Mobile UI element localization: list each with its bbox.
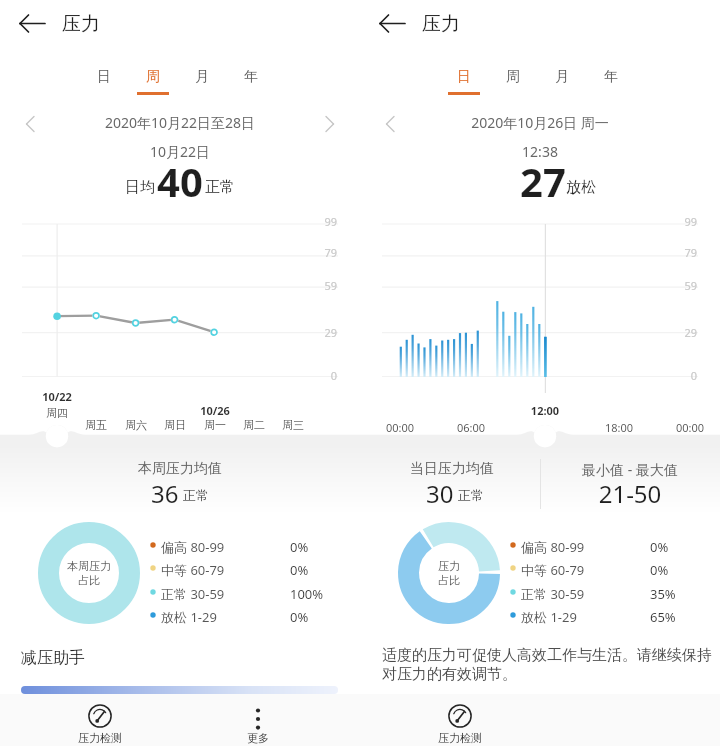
button[interactable]: Back <box>368 6 412 50</box>
staticText: 当日压力均值 <box>368 460 536 478</box>
staticText: 06:00 <box>449 420 493 435</box>
staticText: 本周压力均值 <box>0 460 360 478</box>
staticText: 00:00 <box>378 420 422 435</box>
staticText: 59 <box>660 278 697 293</box>
staticText: 29 <box>300 325 337 340</box>
button[interactable]: 年 <box>590 61 632 97</box>
staticText: 减压助手 <box>21 648 85 668</box>
button[interactable]: Previous period <box>12 108 44 140</box>
staticText: 周四 <box>39 406 75 420</box>
staticText: 最小值 - 最大值 <box>550 460 710 479</box>
staticText: 2020年10月26日 周一 <box>360 113 720 132</box>
button[interactable]: 偏高 80-99 <box>504 536 656 559</box>
staticText: 99 <box>660 214 697 229</box>
staticText: 日 <box>443 68 485 86</box>
staticText: 正常 <box>183 487 209 503</box>
staticText: 0% <box>650 561 710 579</box>
button[interactable]: 月 <box>181 61 223 97</box>
staticText: 放松 1-29 <box>521 608 577 626</box>
button[interactable]: 日 <box>83 61 125 97</box>
staticText: 2020年10月22日至28日 <box>0 113 360 132</box>
button[interactable]: 年 <box>230 61 272 97</box>
staticText: 12:00 <box>525 403 565 418</box>
staticText: 0% <box>290 538 350 556</box>
button[interactable]: 本周压力 占比 <box>38 522 140 624</box>
staticText: 10月22日 <box>0 142 360 161</box>
staticText: 0% <box>290 608 350 626</box>
staticText: 10/26 <box>195 403 235 418</box>
staticText: 10/22 <box>37 389 77 404</box>
staticText: 周二 <box>236 418 272 432</box>
staticText: 59 <box>300 278 337 293</box>
staticText: 40 <box>157 154 203 208</box>
button[interactable]: 放松 1-29 <box>144 606 296 629</box>
button[interactable]: 中等 60-79 <box>144 559 296 582</box>
staticText: 适度的压力可促使人高效工作与生活。请继续保持对压力的有效调节。 <box>382 646 712 684</box>
button[interactable]: 正常 30-59 <box>144 583 296 606</box>
staticText: 79 <box>660 245 697 260</box>
staticText: 放松 1-29 <box>161 608 217 626</box>
staticText: 正常 30-59 <box>161 585 225 603</box>
button[interactable]: 偏高 80-99 <box>144 536 296 559</box>
staticText: 周日 <box>157 418 193 432</box>
button[interactable]: 压力检测 <box>420 698 500 746</box>
staticText: 100% <box>290 585 350 603</box>
button[interactable]: 压力 占比 <box>398 522 500 624</box>
staticText: 正常 <box>205 178 235 197</box>
button[interactable]: Next period <box>316 108 348 140</box>
staticText: 压力检测 <box>420 731 500 745</box>
staticText: 0 <box>300 368 337 383</box>
button[interactable]: 周 <box>132 61 174 97</box>
staticText: 周三 <box>275 418 311 432</box>
staticText: 偏高 80-99 <box>521 538 585 556</box>
staticText: 周 <box>492 68 534 86</box>
staticText: 00:00 <box>668 420 712 435</box>
staticText: 0% <box>290 561 350 579</box>
staticText: 65% <box>650 608 710 626</box>
button[interactable]: 日 <box>443 61 485 97</box>
staticText: 周六 <box>118 418 154 432</box>
button[interactable]: 放松 1-29 <box>504 606 656 629</box>
staticText: 12:38 <box>360 142 720 161</box>
button[interactable]: 周 <box>492 61 534 97</box>
staticText: 周五 <box>78 418 114 432</box>
button[interactable]: More <box>218 698 298 746</box>
staticText: 周一 <box>197 418 233 432</box>
staticText: 18:00 <box>597 420 641 435</box>
staticText: 29 <box>660 325 697 340</box>
staticText: 中等 60-79 <box>161 561 225 579</box>
staticText: 周 <box>132 68 174 86</box>
staticText: 日 <box>83 68 125 86</box>
staticText: 0% <box>650 538 710 556</box>
button[interactable]: Back <box>8 6 52 50</box>
staticText: 35% <box>650 585 710 603</box>
staticText: 月 <box>181 68 223 86</box>
staticText: 压力 <box>422 12 460 36</box>
button[interactable]: Previous period <box>372 108 404 140</box>
staticText: 27 <box>520 154 566 208</box>
staticText: 年 <box>230 68 272 86</box>
staticText: 压力检测 <box>60 731 140 745</box>
staticText: 中等 60-79 <box>521 561 585 579</box>
staticText: 本周压力 占比 <box>38 559 140 587</box>
button[interactable]: 正常 30-59 <box>504 583 656 606</box>
staticText: 年 <box>590 68 632 86</box>
button[interactable]: 中等 60-79 <box>504 559 656 582</box>
staticText: 月 <box>541 68 583 86</box>
staticText: 放松 <box>566 178 596 197</box>
staticText: 更多 <box>218 731 298 745</box>
button[interactable] <box>21 686 338 694</box>
staticText: 79 <box>300 245 337 260</box>
staticText: 压力 占比 <box>398 559 500 587</box>
staticText: 30 <box>426 477 454 510</box>
button[interactable]: 月 <box>541 61 583 97</box>
staticText: 99 <box>300 214 337 229</box>
staticText: 压力 <box>62 12 100 36</box>
staticText: 偏高 80-99 <box>161 538 225 556</box>
staticText: 日均 <box>125 178 155 197</box>
staticText: 0 <box>660 368 697 383</box>
staticText: 正常 <box>458 487 484 503</box>
staticText: 36 <box>151 477 179 510</box>
staticText: 21-50 <box>550 477 710 510</box>
button[interactable]: 压力检测 <box>60 698 140 746</box>
